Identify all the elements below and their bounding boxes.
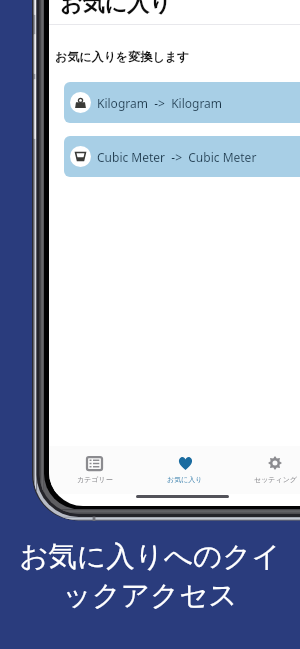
staticText: カテゴリー bbox=[77, 475, 113, 484]
button[interactable]: Kilogram -> Kilogram bbox=[64, 82, 300, 123]
staticText: お気に入りを変換します bbox=[55, 49, 189, 64]
staticText: ックアクセス bbox=[62, 578, 238, 614]
staticText: お気に入り bbox=[167, 475, 203, 484]
button[interactable]: Cubic Meter -> Cubic Meter bbox=[64, 136, 300, 177]
staticText: Kilogram -> Kilogram bbox=[97, 95, 223, 111]
button[interactable]: Favorites bbox=[140, 446, 230, 494]
staticText: セッティング bbox=[254, 475, 297, 484]
staticText: お気に入り bbox=[60, 0, 172, 18]
button[interactable]: Categories bbox=[49, 446, 140, 494]
staticText: Cubic Meter -> Cubic Meter bbox=[97, 149, 257, 165]
staticText: お気に入りへのクイ bbox=[19, 539, 281, 575]
button[interactable]: Settings bbox=[230, 446, 300, 494]
